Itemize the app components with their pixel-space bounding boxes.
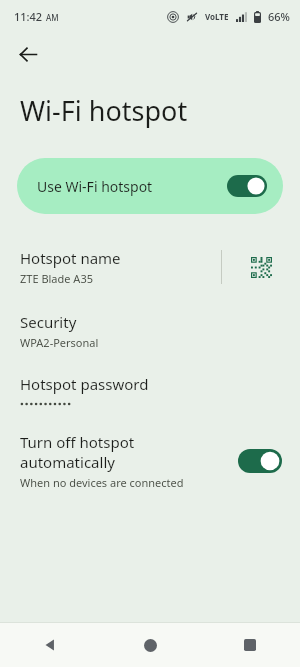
staticText: When no devices are connected bbox=[20, 475, 184, 490]
staticText: AM bbox=[46, 12, 59, 23]
button[interactable]: Back bbox=[0, 623, 100, 667]
button[interactable]: Recent apps bbox=[200, 623, 300, 667]
staticText: Turn off hotspot bbox=[20, 432, 135, 452]
button[interactable]: Turn off hotspot bbox=[0, 422, 300, 500]
staticText: VoLTE bbox=[205, 11, 229, 22]
staticText: Hotspot name bbox=[20, 248, 121, 268]
button[interactable]: Toggle on bbox=[238, 449, 282, 473]
button[interactable]: Hotspot password bbox=[0, 360, 300, 422]
staticText: Wi-Fi hotspot bbox=[20, 92, 188, 129]
button[interactable]: Hotspot name bbox=[0, 236, 300, 298]
button[interactable]: Security bbox=[0, 298, 300, 360]
staticText: 11:42 bbox=[14, 9, 43, 24]
button[interactable]: Back bbox=[8, 34, 48, 74]
staticText: WPA2-Personal bbox=[20, 335, 99, 350]
button[interactable]: Toggle on bbox=[227, 175, 267, 197]
staticText: Hotspot password bbox=[20, 374, 149, 394]
staticText: 66% bbox=[268, 9, 290, 24]
button[interactable]: Use Wi-Fi hotspot bbox=[17, 158, 283, 214]
staticText: Use Wi-Fi hotspot bbox=[37, 177, 227, 196]
staticText: Security bbox=[20, 312, 77, 332]
button[interactable]: Share hotspot QR code bbox=[222, 236, 300, 298]
staticText: ZTE Blade A35 bbox=[20, 271, 93, 286]
button[interactable]: Home bbox=[100, 623, 200, 667]
staticText: automatically bbox=[20, 452, 115, 472]
